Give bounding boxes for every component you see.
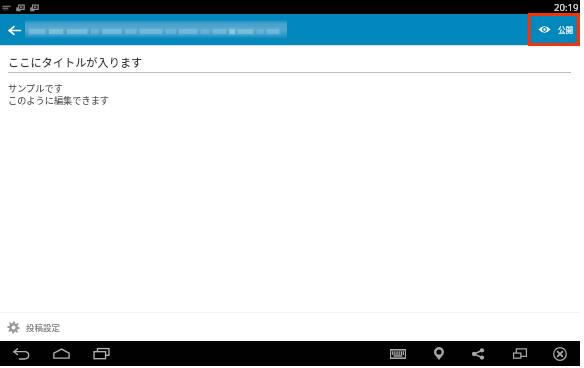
staticText: 公開 — [558, 24, 573, 35]
button[interactable]: Keyboard — [385, 341, 411, 366]
staticText: 20:19 — [554, 1, 579, 14]
button[interactable]: Back — [8, 341, 34, 366]
button[interactable]: Share — [465, 341, 491, 366]
button[interactable]: 公開 — [533, 14, 578, 45]
button[interactable]: Back — [0, 16, 28, 44]
staticText: 投稿設定 — [26, 321, 61, 333]
button[interactable]: Close — [547, 341, 573, 366]
button[interactable]: Recent apps — [88, 341, 114, 366]
button[interactable]: Home — [48, 341, 74, 366]
staticText: サンプルです このように編集できます — [8, 81, 110, 106]
button[interactable]: Cast screen — [507, 341, 533, 366]
button[interactable]: 投稿設定 — [0, 313, 580, 341]
button[interactable]: Location — [426, 341, 452, 366]
staticText: ここにタイトルが入ります — [8, 54, 143, 70]
